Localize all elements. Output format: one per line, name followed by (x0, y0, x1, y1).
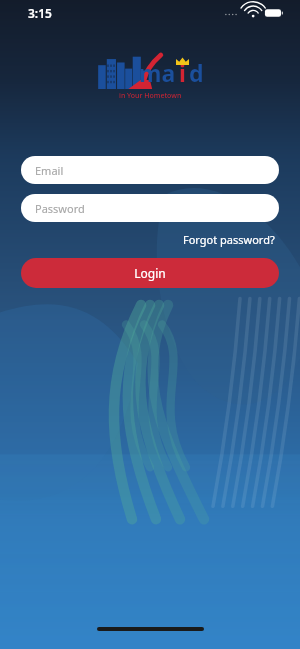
staticText: Email (35, 163, 64, 178)
button[interactable]: Password (21, 194, 279, 222)
staticText: Login (134, 265, 166, 281)
button[interactable]: Forgot password? (179, 230, 279, 249)
staticText: Forgot password? (183, 232, 275, 247)
button[interactable]: Email (21, 156, 279, 184)
button[interactable]: Login (21, 258, 279, 288)
other: Home indicator (97, 627, 204, 631)
staticText: in Your Hometown (119, 91, 182, 101)
staticText: 3:15 (28, 5, 52, 21)
staticText: ma (139, 57, 176, 88)
staticText: i (179, 57, 186, 88)
staticText: d (189, 57, 204, 88)
staticText: Password (35, 201, 85, 216)
